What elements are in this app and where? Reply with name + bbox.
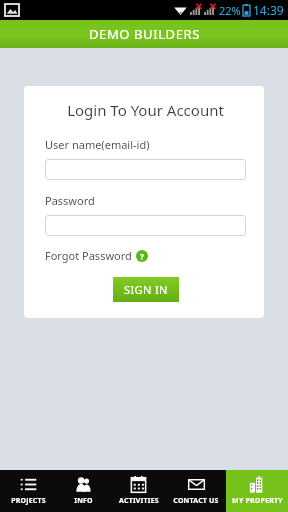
staticText: 22% <box>219 3 241 18</box>
button[interactable]: PROJECTS <box>0 470 56 512</box>
button[interactable]: SIGN IN <box>113 277 179 302</box>
button[interactable] <box>45 215 246 236</box>
staticText: DEMO BUILDERS <box>89 25 200 43</box>
button[interactable]: CONTACT US <box>166 470 226 512</box>
button[interactable]: MY PROPERTY <box>226 470 288 512</box>
staticText: Login To Your Account <box>45 100 246 120</box>
button[interactable]: Forgot Password <box>45 248 148 263</box>
button[interactable] <box>45 159 246 180</box>
staticText: ACTIVITIES <box>119 496 159 506</box>
staticText: INFO <box>74 496 93 506</box>
staticText: PROJECTS <box>11 496 46 506</box>
staticText: SIGN IN <box>124 282 168 297</box>
staticText: CONTACT US <box>173 496 219 506</box>
button[interactable]: INFO <box>56 470 111 512</box>
staticText: Password <box>45 193 95 208</box>
staticText: User name(email-id) <box>45 137 150 152</box>
button[interactable]: ACTIVITIES <box>111 470 166 512</box>
staticText: ? <box>140 251 144 262</box>
staticText: MY PROPERTY <box>232 496 283 506</box>
staticText: Forgot Password <box>45 248 132 263</box>
staticText: 14:39 <box>253 2 284 18</box>
